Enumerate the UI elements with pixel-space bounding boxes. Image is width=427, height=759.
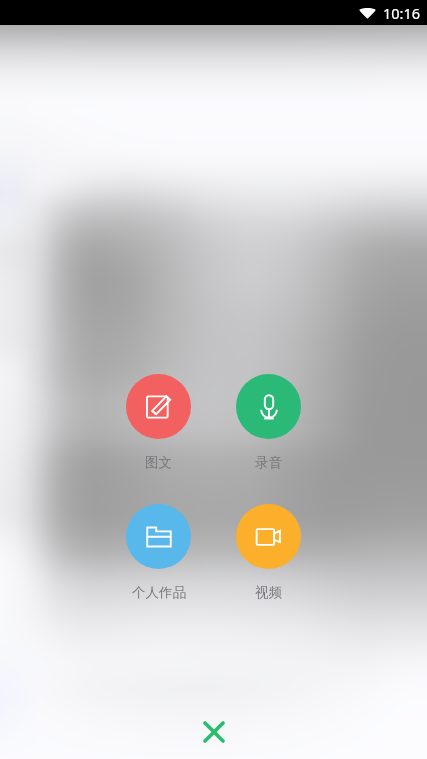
button[interactable]: 视频 bbox=[224, 504, 313, 601]
button[interactable]: 录音 bbox=[224, 374, 313, 471]
staticText: 录音 bbox=[255, 454, 282, 471]
staticText: 10:16 bbox=[383, 3, 421, 23]
button[interactable]: 个人作品 bbox=[114, 504, 203, 601]
button[interactable]: Close bbox=[192, 710, 235, 753]
staticText: 个人作品 bbox=[132, 584, 186, 601]
staticText: 图文 bbox=[145, 454, 172, 471]
staticText: 视频 bbox=[255, 584, 282, 601]
button[interactable]: 图文 bbox=[114, 374, 203, 471]
